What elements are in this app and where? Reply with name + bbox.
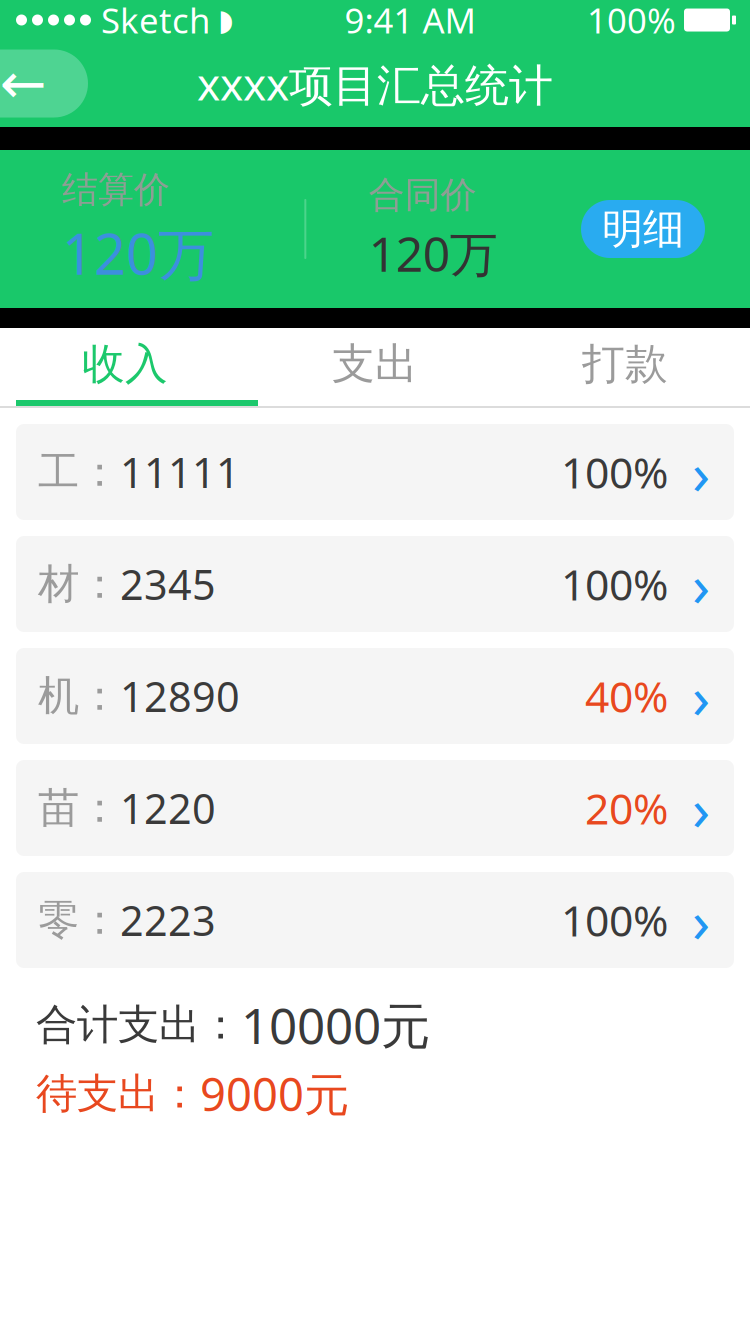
- staticText: 12890: [120, 669, 240, 723]
- staticText: 100%: [561, 556, 668, 612]
- button[interactable]: 收入: [0, 328, 250, 400]
- staticText: 零：: [38, 895, 120, 945]
- button[interactable]: 工：: [16, 424, 734, 520]
- staticText: 9000元: [200, 1063, 349, 1124]
- button[interactable]: 材：: [16, 536, 734, 632]
- staticText: 120万: [62, 216, 214, 290]
- staticText: 40%: [585, 668, 668, 724]
- staticText: ›: [692, 769, 710, 847]
- staticText: 工：: [38, 447, 120, 497]
- staticText: ›: [692, 657, 710, 735]
- staticText: ›: [692, 433, 710, 511]
- staticText: ›: [692, 545, 710, 623]
- staticText: 2345: [120, 557, 216, 611]
- staticText: 120万: [369, 221, 498, 285]
- staticText: 苗：: [38, 783, 120, 833]
- button[interactable]: 打款: [500, 328, 750, 400]
- staticText: 机：: [38, 671, 120, 721]
- staticText: ◗: [218, 3, 233, 37]
- staticText: 支出: [332, 338, 418, 390]
- staticText: ←: [0, 52, 46, 115]
- staticText: 合计支出：: [36, 999, 241, 1050]
- staticText: Sketch: [101, 0, 210, 43]
- staticText: 明细: [602, 204, 684, 254]
- button[interactable]: 机：: [16, 648, 734, 744]
- button[interactable]: 零：: [16, 872, 734, 968]
- staticText: 结算价: [62, 168, 170, 212]
- staticText: ›: [692, 881, 710, 959]
- staticText: 11111: [120, 445, 240, 499]
- button[interactable]: 支出: [250, 328, 500, 400]
- staticText: 10000元: [241, 992, 430, 1057]
- staticText: 20%: [585, 780, 668, 836]
- staticText: 2223: [120, 893, 216, 947]
- staticText: 收入: [82, 338, 168, 390]
- staticText: 合同价: [369, 173, 477, 217]
- staticText: 打款: [582, 338, 668, 390]
- staticText: 100%: [561, 444, 668, 500]
- staticText: 1220: [120, 781, 216, 835]
- staticText: 100%: [587, 0, 676, 43]
- button[interactable]: 明细: [581, 200, 705, 258]
- staticText: 待支出：: [36, 1068, 200, 1119]
- staticText: 100%: [561, 892, 668, 948]
- button[interactable]: 苗：: [16, 760, 734, 856]
- staticText: 材：: [38, 559, 120, 609]
- staticText: 9:41 AM: [344, 0, 475, 43]
- staticText: xxxx项目汇总统计: [197, 54, 553, 113]
- button[interactable]: Back: [0, 49, 88, 117]
